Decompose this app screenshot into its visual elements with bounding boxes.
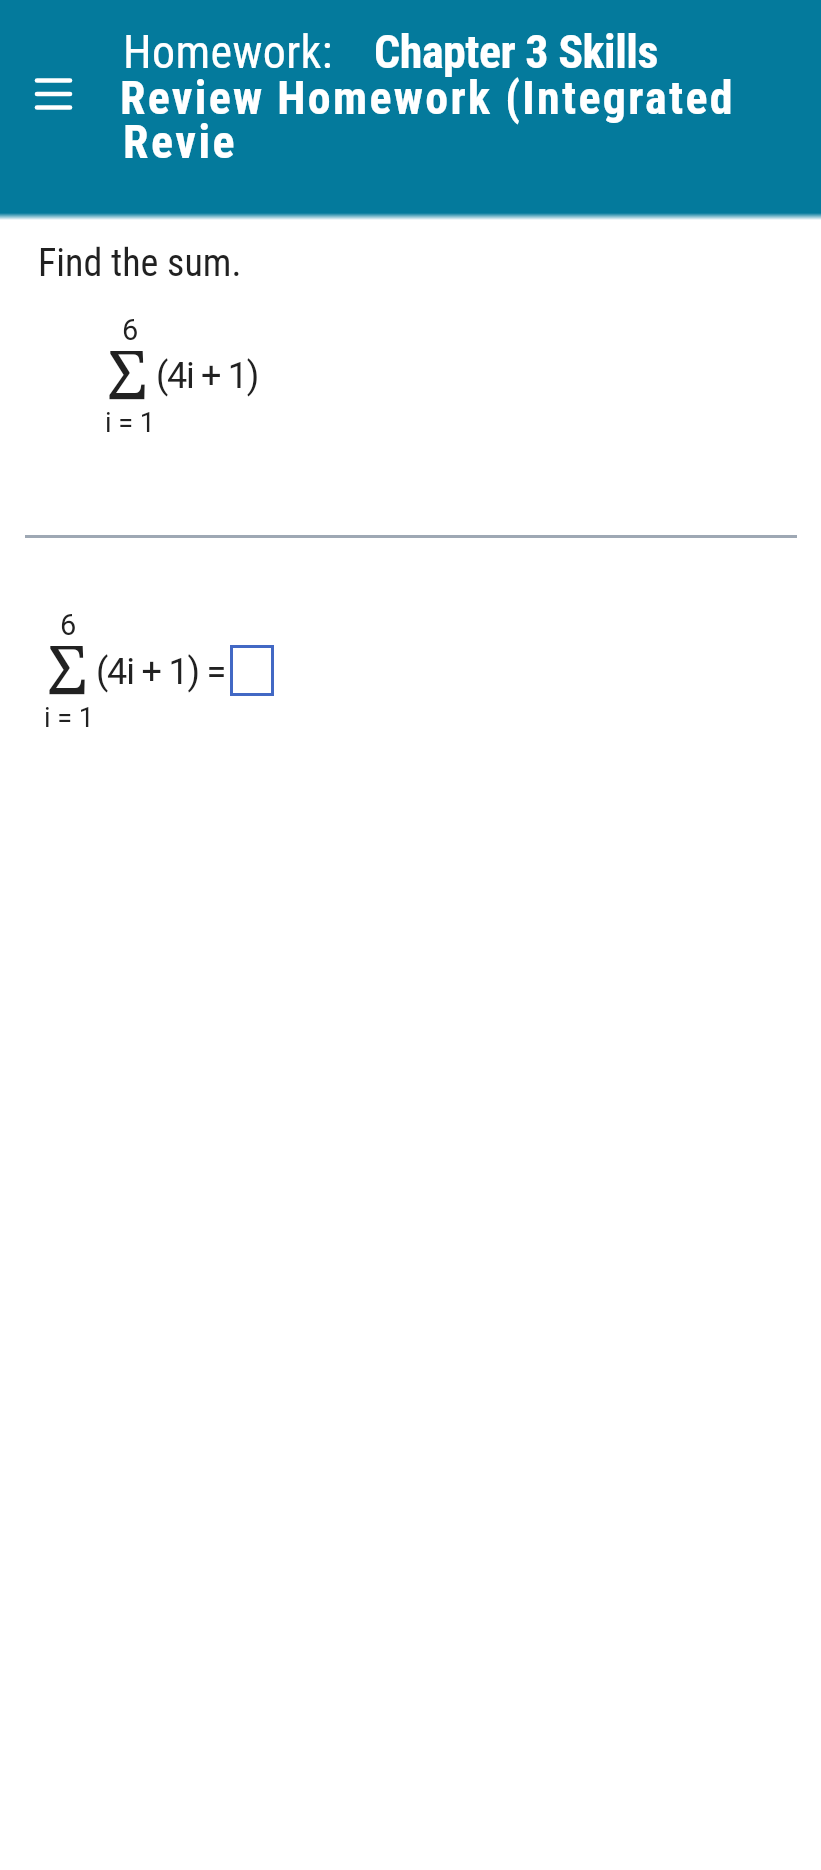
staticText: 6 — [122, 313, 139, 347]
staticText: i = 1 — [105, 407, 155, 439]
staticText: Review Homework (Integrated — [120, 71, 735, 125]
staticText: (4i + 1) = — [96, 651, 226, 693]
staticText: Find the sum. — [38, 241, 242, 286]
staticText: Chapter 3 Skills — [374, 25, 658, 79]
staticText: 6 — [60, 608, 77, 642]
staticText: Σ — [107, 327, 148, 418]
staticText: Revie — [123, 115, 238, 169]
staticText: (4i + 1) — [156, 355, 258, 397]
button[interactable] — [23, 70, 83, 118]
staticText: i = 1 — [44, 702, 94, 734]
button[interactable] — [230, 645, 274, 696]
staticText: Σ — [47, 622, 88, 713]
staticText: Homework: — [123, 25, 333, 79]
